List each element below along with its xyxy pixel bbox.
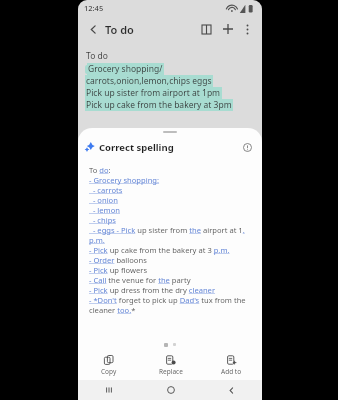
staticText: p.m. (89, 235, 105, 245)
staticText: Replace (159, 367, 183, 376)
button[interactable]: Replace (140, 350, 201, 380)
staticText: - eggs - Pick up sister from the airport… (89, 225, 245, 235)
staticText: - Grocery shopping: (89, 175, 160, 185)
button[interactable]: Recents (78, 380, 140, 400)
staticText: - Call the venue for the party (89, 275, 191, 285)
staticText: Pick up sister from airport at 1pm (86, 87, 221, 99)
staticText: - Pick up cake from the bakery at 3 p.m. (89, 245, 230, 255)
staticText: - *Don't forget to pick up Dad's tux fro… (89, 295, 246, 305)
button[interactable]: Add (219, 20, 237, 38)
staticText: carrots,onion,lemon,chips eggs (86, 75, 212, 87)
button[interactable]: Back (201, 380, 262, 400)
staticText: Grocery shopping/ (88, 63, 163, 75)
button[interactable]: Add to (201, 350, 262, 380)
staticText: - chips (89, 215, 116, 225)
button[interactable]: Home (140, 380, 201, 400)
staticText: - Pick up dress from the dry cleaner (89, 285, 216, 295)
staticText: cleaner too.* (89, 305, 136, 315)
staticText: - Order balloons (89, 255, 147, 265)
staticText: To do (86, 50, 108, 62)
staticText: Add to (221, 367, 242, 376)
staticText: 12:45 (84, 3, 104, 13)
staticText: Pick up cake from the bakery at 3pm (86, 99, 232, 111)
staticText: - onion (89, 195, 118, 205)
staticText: To do: (89, 165, 111, 175)
button[interactable]: Copy (78, 350, 140, 380)
staticText: To do (105, 22, 134, 37)
staticText: Correct spelling (99, 141, 174, 154)
button[interactable]: Back (84, 20, 102, 38)
staticText: Copy (101, 367, 117, 376)
button[interactable]: Reading view (197, 20, 215, 38)
button[interactable]: Information (240, 140, 254, 154)
staticText: - carrots (89, 185, 123, 195)
staticText: - lemon (89, 205, 120, 215)
staticText: - Pick up flowers (89, 265, 148, 275)
button[interactable]: More options (239, 21, 255, 37)
